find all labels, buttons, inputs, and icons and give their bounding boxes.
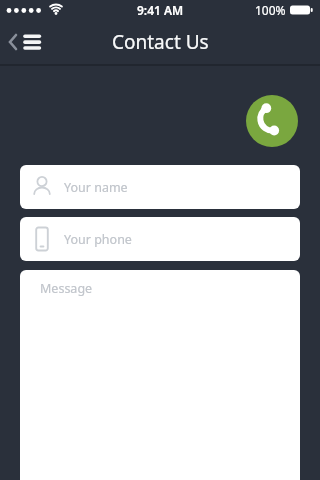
staticText: Your name [64, 179, 128, 196]
button[interactable] [8, 30, 44, 54]
staticText: 100% [255, 2, 286, 18]
staticText: 9:41 AM [137, 2, 184, 18]
staticText: Contact Us [112, 29, 209, 55]
button[interactable] [246, 95, 298, 147]
button[interactable]: Your name [20, 165, 300, 209]
staticText: Your phone [64, 231, 132, 248]
button[interactable]: Your phone [20, 217, 300, 261]
button[interactable]: Message [20, 270, 300, 480]
staticText: Message [40, 280, 93, 297]
